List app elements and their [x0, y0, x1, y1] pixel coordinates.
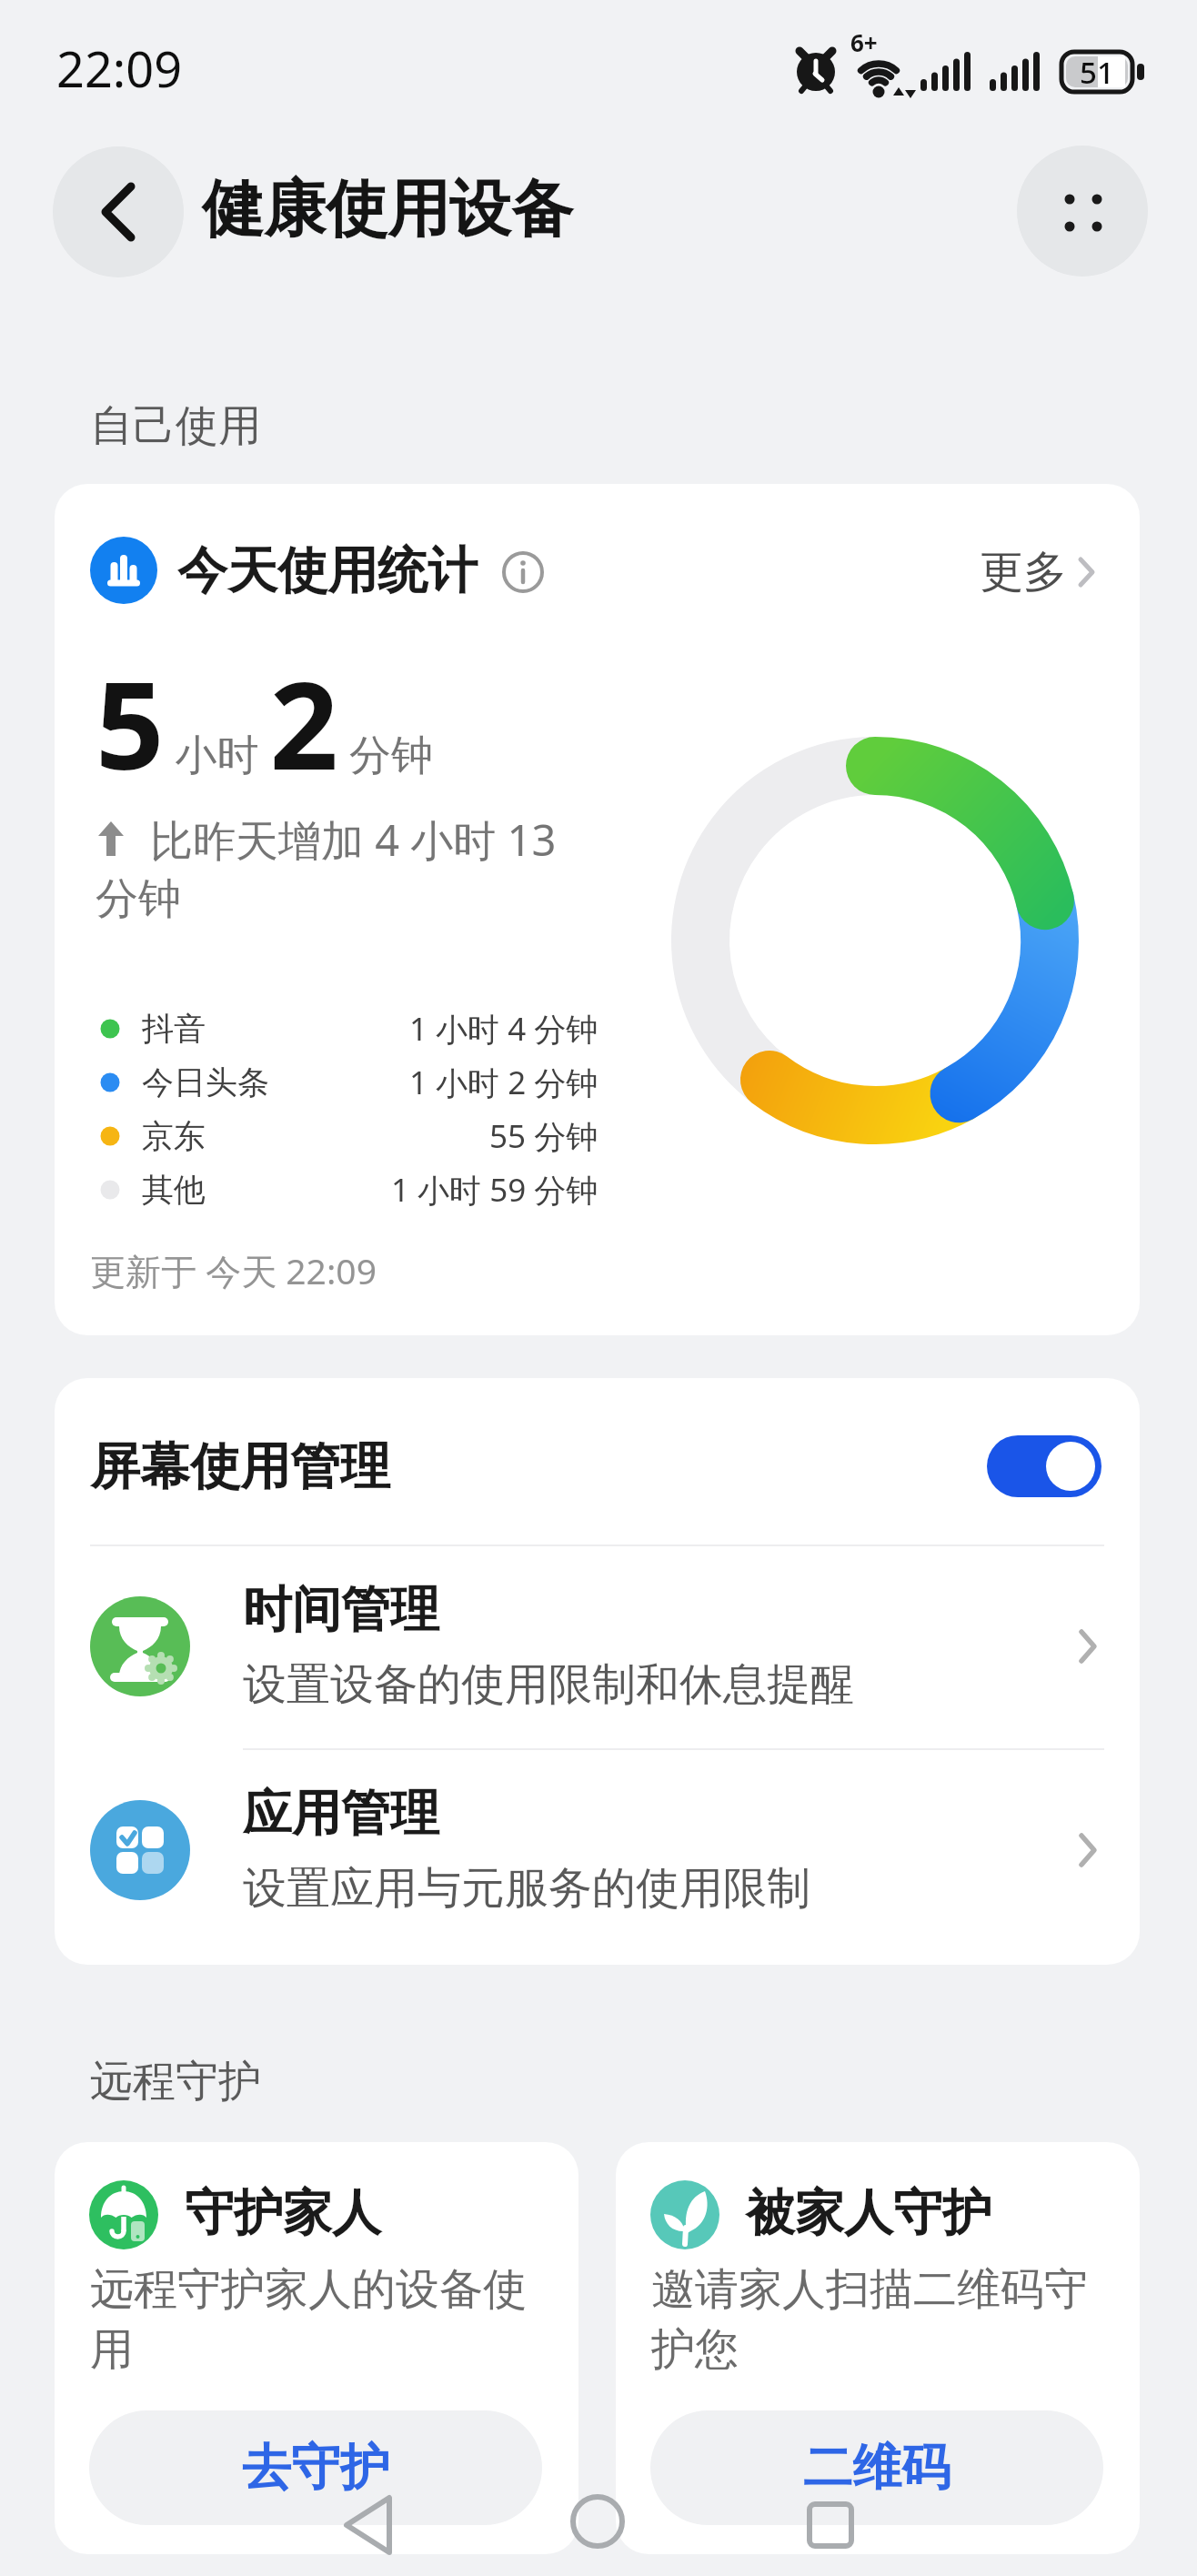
staticText: 被家人守护: [746, 2182, 991, 2244]
button[interactable]: [780, 2483, 880, 2570]
button[interactable]: [498, 548, 548, 597]
button[interactable]: 更多: [941, 531, 1105, 613]
staticText: 51: [1080, 52, 1114, 92]
button[interactable]: 去守护: [89, 2410, 542, 2525]
staticText: 时间管理: [243, 1579, 439, 1641]
staticText: 二维码: [803, 2437, 951, 2499]
staticText: 今天使用统计: [177, 539, 478, 602]
staticText: 应用管理: [243, 1783, 439, 1845]
staticText: 更新于 今天 22:09: [90, 1246, 377, 1294]
staticText: 远程守护家人的设备使用: [90, 2262, 545, 2378]
staticText: 京东: [142, 1116, 206, 1156]
staticText: 去守护: [242, 2437, 389, 2499]
staticText: 22:09: [56, 35, 183, 102]
staticText: 1 小时 4 分钟: [409, 1007, 598, 1051]
staticText: 设置设备的使用限制和休息提醒: [243, 1657, 854, 1712]
staticText: 分钟: [96, 872, 181, 926]
button[interactable]: [548, 2471, 648, 2571]
staticText: 自己使用: [90, 399, 261, 453]
button[interactable]: 应用管理: [55, 1773, 1140, 1929]
staticText: 更多: [980, 545, 1067, 599]
button[interactable]: 被家人守护: [616, 2142, 1140, 2554]
button[interactable]: [53, 146, 184, 277]
staticText: 6+: [850, 26, 878, 58]
button[interactable]: [1017, 146, 1148, 277]
staticText: 1 小时 2 分钟: [409, 1061, 598, 1104]
staticText: 设置应用与元服务的使用限制: [243, 1861, 810, 1916]
button[interactable]: [318, 2483, 418, 2570]
button[interactable]: 守护家人: [55, 2142, 578, 2554]
staticText: 今日头条: [142, 1062, 269, 1102]
button[interactable]: 时间管理: [55, 1569, 1140, 1726]
button[interactable]: 二维码: [650, 2410, 1103, 2525]
staticText: 其他: [142, 1170, 206, 1210]
staticText: 55 分钟: [489, 1114, 598, 1158]
staticText: 远程守护: [90, 2055, 261, 2108]
staticText: 比昨天增加 4 小时 13: [150, 810, 557, 869]
staticText: 屏幕使用管理: [90, 1435, 390, 1498]
button[interactable]: [987, 1435, 1101, 1497]
staticText: 邀请家人扫描二维码守护您: [651, 2262, 1106, 2378]
staticText: 1 小时 59 分钟: [391, 1168, 598, 1212]
staticText: 5 小时 2 分钟: [96, 641, 433, 805]
staticText: 健康使用设备: [202, 171, 573, 249]
staticText: 抖音: [142, 1009, 206, 1049]
staticText: 守护家人: [185, 2182, 381, 2244]
